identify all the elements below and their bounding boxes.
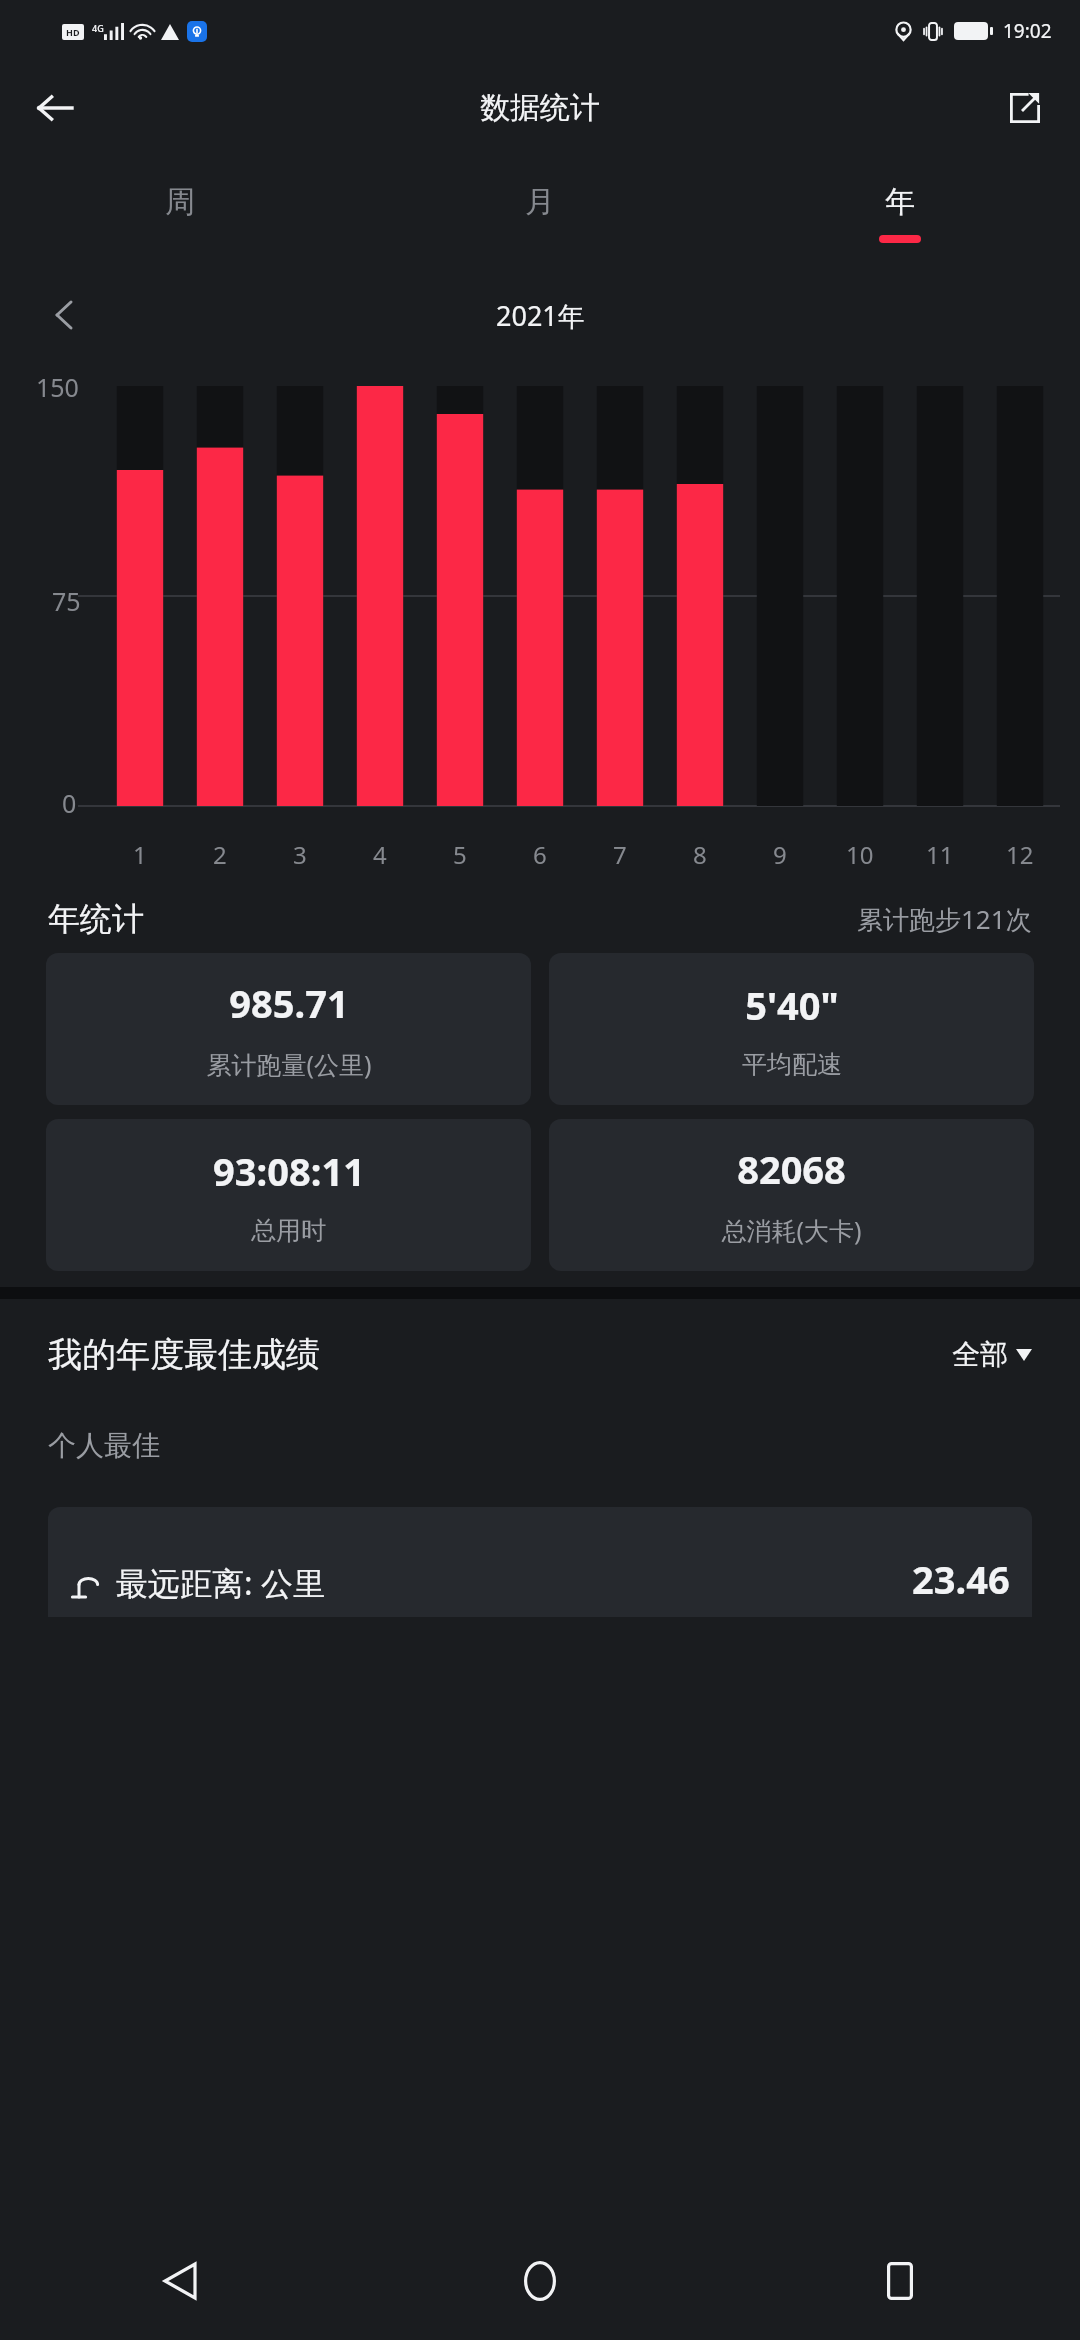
button[interactable]: 分享 bbox=[994, 77, 1056, 139]
button[interactable]: 最远距离: 公里 bbox=[48, 1507, 1032, 1617]
staticText: 年统计 bbox=[48, 899, 144, 939]
button[interactable]: 82068 bbox=[549, 1119, 1034, 1271]
button[interactable]: 5'40" bbox=[549, 953, 1034, 1105]
staticText: 5 bbox=[453, 838, 467, 871]
staticText: 23.46 bbox=[912, 1553, 1010, 1605]
button[interactable]: 93:08:11 bbox=[46, 1119, 531, 1271]
staticText: 4G bbox=[92, 22, 104, 34]
staticText: 最远距离: 公里 bbox=[116, 1561, 325, 1605]
staticText: 4 bbox=[373, 838, 387, 871]
staticText: 累计跑步121次 bbox=[857, 901, 1032, 937]
button[interactable]: 最近任务 bbox=[720, 2222, 1080, 2340]
button[interactable]: 年 bbox=[720, 154, 1080, 272]
staticText: 75 bbox=[52, 584, 81, 618]
button[interactable]: 985.71 bbox=[46, 953, 531, 1105]
staticText: 总用时 bbox=[251, 1215, 326, 1246]
staticText: 7 bbox=[613, 838, 627, 871]
button[interactable]: 返回 bbox=[24, 77, 86, 139]
staticText: 985.71 bbox=[229, 977, 349, 1029]
staticText: 个人最佳 bbox=[48, 1428, 160, 1463]
staticText: 3 bbox=[293, 838, 307, 871]
staticText: 150 bbox=[36, 370, 79, 404]
staticText: 5'40" bbox=[745, 979, 839, 1031]
staticText: 1 bbox=[133, 838, 147, 871]
staticText: 我的年度最佳成绩 bbox=[48, 1333, 320, 1376]
staticText: 周 bbox=[165, 183, 195, 221]
staticText: 总消耗(大卡) bbox=[721, 1213, 862, 1247]
staticText: 8 bbox=[693, 838, 707, 871]
staticText: 累计跑量(公里) bbox=[206, 1047, 372, 1081]
button[interactable]: 上一年 bbox=[38, 289, 90, 341]
staticText: 2 bbox=[213, 838, 227, 871]
staticText: 2021年 bbox=[496, 297, 585, 334]
staticText: 9 bbox=[773, 838, 787, 871]
button[interactable]: 返回 bbox=[0, 2222, 360, 2340]
button[interactable]: 周 bbox=[0, 154, 360, 272]
staticText: 数据统计 bbox=[480, 89, 600, 127]
button[interactable]: 月 bbox=[360, 154, 720, 272]
staticText: 年 bbox=[885, 183, 915, 221]
staticText: 6 bbox=[533, 838, 547, 871]
staticText: 19:02 bbox=[1003, 18, 1052, 44]
staticText: 93:08:11 bbox=[213, 1145, 365, 1197]
button[interactable]: 全部 bbox=[952, 1337, 1032, 1372]
staticText: 全部 bbox=[952, 1337, 1008, 1372]
button[interactable]: 主屏幕 bbox=[360, 2222, 720, 2340]
staticText: 月 bbox=[525, 183, 555, 221]
staticText: 12 bbox=[1006, 838, 1034, 871]
staticText: HD bbox=[66, 26, 80, 38]
staticText: 平均配速 bbox=[742, 1049, 842, 1080]
staticText: 82068 bbox=[737, 1143, 846, 1195]
staticText: 0 bbox=[62, 786, 77, 820]
staticText: 11 bbox=[926, 838, 954, 871]
staticText: 10 bbox=[846, 838, 874, 871]
